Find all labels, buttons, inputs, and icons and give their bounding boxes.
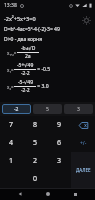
staticText: 0 [33,174,38,184]
staticText: 8 [33,120,38,130]
staticText: 9 [57,120,62,130]
staticText: -2·2 [21,87,30,94]
button[interactable]: Recent apps [68,188,82,200]
staticText: 5 [33,138,38,148]
button[interactable]: -2 [2,104,31,114]
button[interactable]: 0 [23,170,47,188]
button[interactable]: 3 [47,152,71,170]
staticText: x₁,₂= [7,50,17,56]
staticText: 13:38 [4,2,17,9]
staticText: D=b²-4ac=5²-4·(-2)·3= 49 [4,26,60,33]
button[interactable]: ДАЛЕЕ [71,152,95,188]
staticText: 7 [9,120,14,130]
staticText: x₂= [7,84,14,90]
staticText: 2a [25,53,31,60]
staticText: -5-√49 [18,79,33,86]
staticText: 4 [9,138,14,148]
staticText: ДАЛЕЕ [76,167,91,173]
button[interactable]: Home [41,188,55,200]
staticText: 6 [57,138,62,148]
staticText: -5+√49 [17,62,34,69]
staticText: = -0.5 [36,66,51,73]
button[interactable]: 3 [64,104,93,114]
button[interactable]: 1 [0,152,23,170]
button[interactable]: Toggle brightness [80,14,92,26]
button[interactable]: 8 [23,116,47,134]
staticText: 1 [9,156,14,166]
staticText: x₁= [7,67,14,73]
button[interactable]: Backspace [71,116,95,134]
button[interactable]: 5 [23,134,47,152]
staticText: 2 [33,156,38,166]
staticText: D>0 - два корня [4,36,43,43]
button[interactable]: Back [13,188,27,200]
staticText: 3 [77,106,80,113]
button[interactable]: Toggle sign [71,134,95,152]
staticText: +/- [80,140,87,147]
button[interactable]: 2 [23,152,47,170]
button[interactable]: 4 [0,134,23,152]
button[interactable]: 5 [33,104,62,114]
staticText: 3 [57,156,62,166]
staticText: -2 [14,106,19,113]
staticText: = 3.0 [36,83,49,90]
button[interactable]: 9 [47,116,71,134]
staticText: 5 [46,106,49,113]
staticText: -2x²+5x+3=0 [4,15,36,22]
button[interactable]: 7 [0,116,23,134]
button[interactable]: 6 [47,134,71,152]
staticText: -b±√D [21,45,36,52]
staticText: -2·2 [21,70,30,77]
